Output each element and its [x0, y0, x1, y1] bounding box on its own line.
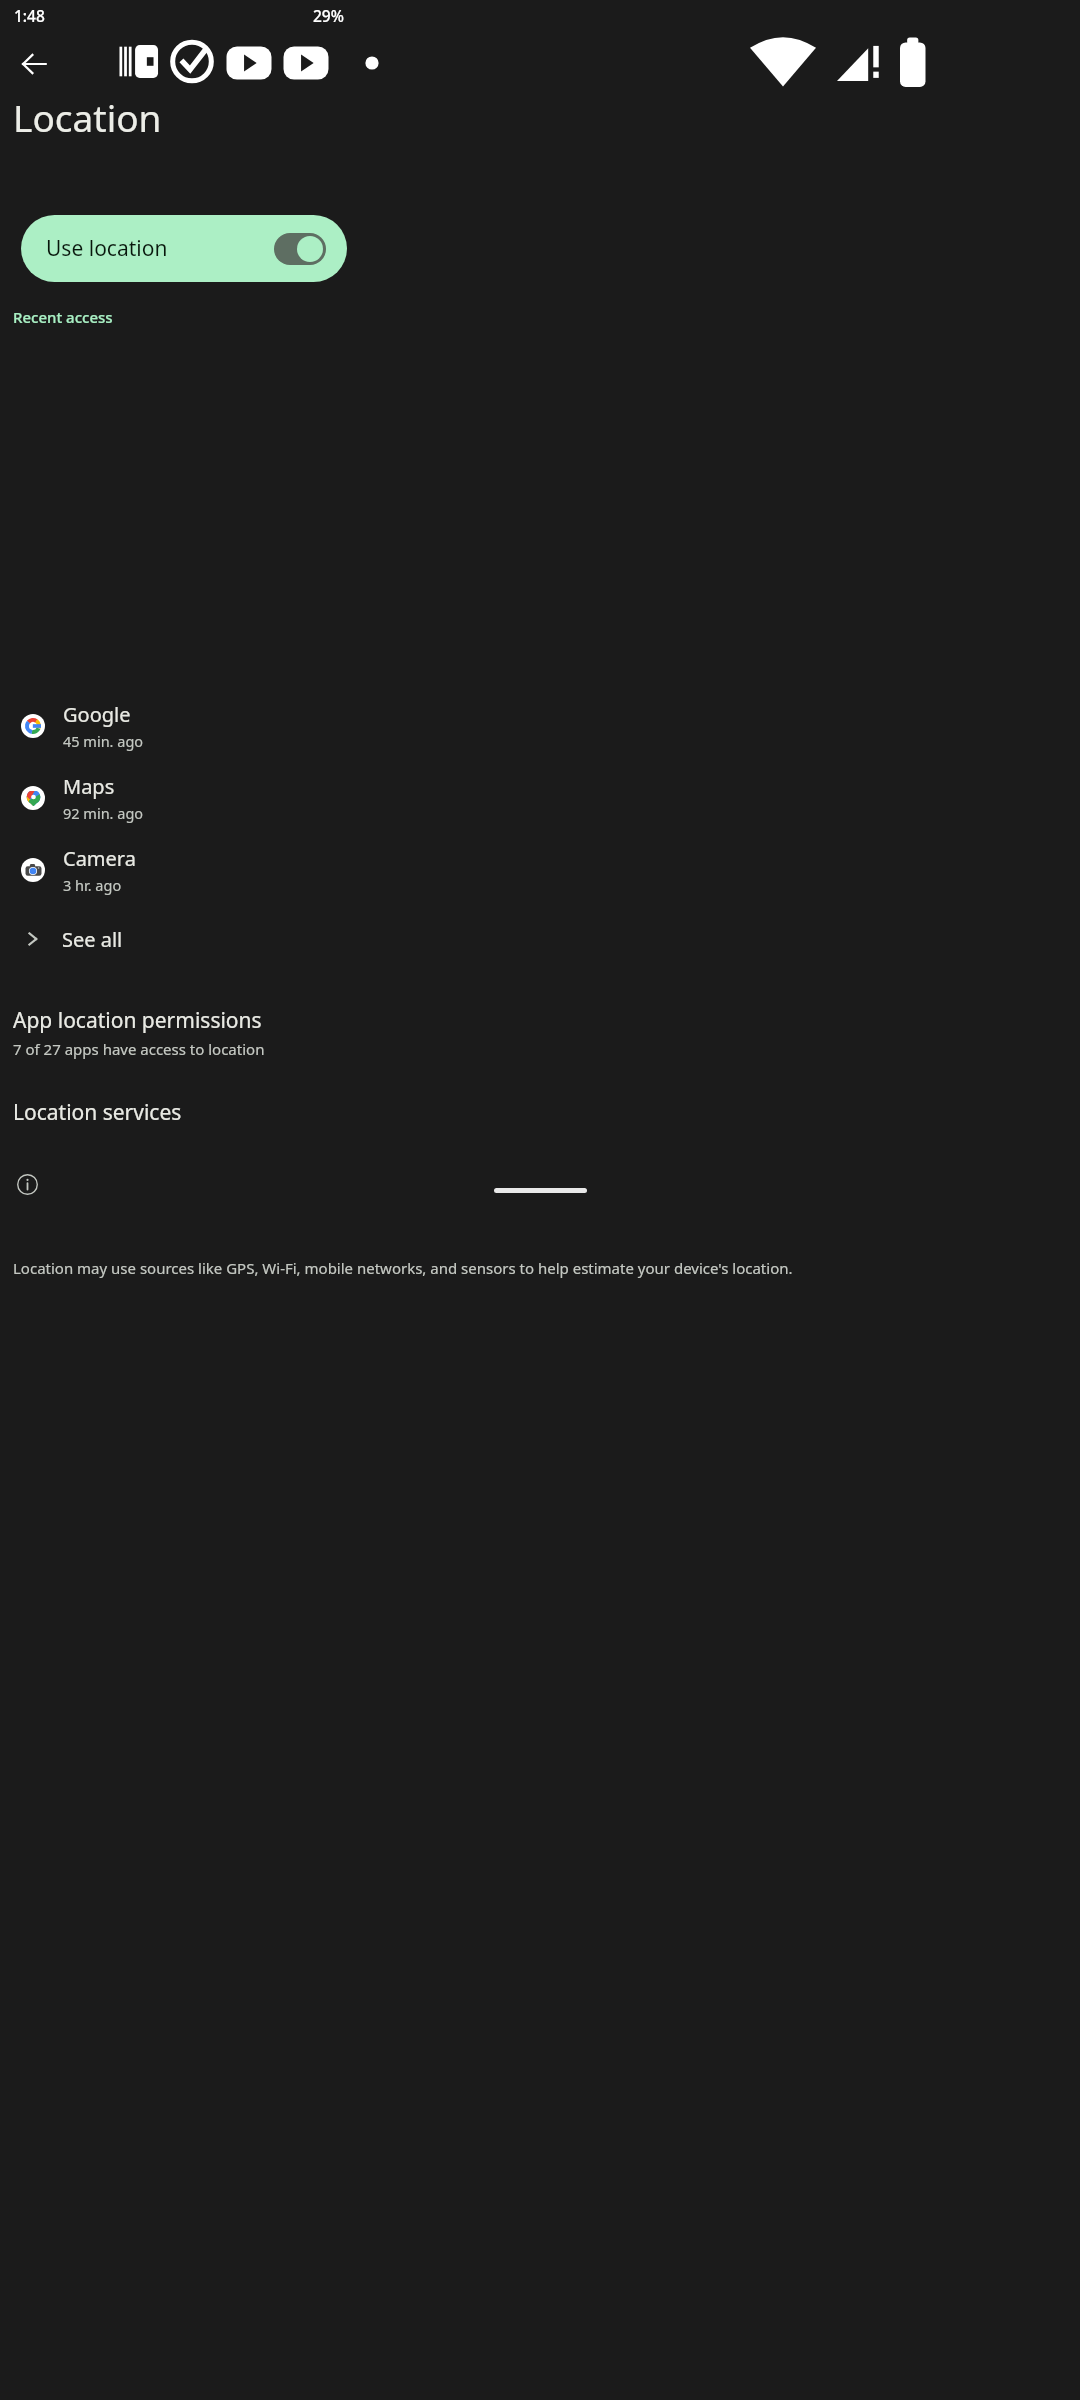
staticText: 29% [313, 5, 344, 26]
button[interactable]: Location services [0, 1092, 1080, 1137]
staticText: Recent access [13, 307, 113, 327]
button[interactable]: Use location [21, 215, 347, 282]
button[interactable]: Back [6, 36, 62, 92]
staticText: Maps [63, 773, 115, 800]
staticText: 7 of 27 apps have access to location [13, 1039, 265, 1059]
staticText: 1:48 [14, 5, 45, 26]
staticText: 45 min. ago [63, 731, 144, 751]
button[interactable]: Camera [0, 834, 1080, 906]
staticText: App location permissions [13, 1006, 262, 1035]
button[interactable]: Maps [0, 762, 1080, 834]
staticText: 3 hr. ago [63, 875, 122, 895]
button[interactable]: App location permissions [0, 1000, 1080, 1069]
staticText: Location services [13, 1098, 182, 1127]
button[interactable]: See all [0, 906, 1080, 972]
staticText: Use location [46, 234, 168, 263]
staticText: Location [13, 92, 162, 142]
staticText: See all [62, 926, 123, 953]
button[interactable]: Google [0, 690, 1080, 762]
staticText: Location may use sources like GPS, Wi-Fi… [13, 1258, 793, 1278]
staticText: 92 min. ago [63, 803, 144, 823]
staticText: Camera [63, 845, 136, 872]
staticText: Google [63, 701, 131, 728]
